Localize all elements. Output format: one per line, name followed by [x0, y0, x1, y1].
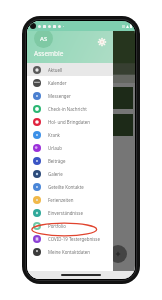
button[interactable]: Meine Kontaktdaten [27, 245, 113, 258]
staticText: Hol- und Bringdaten [48, 119, 91, 125]
button[interactable]: Portfolio [27, 219, 113, 232]
button[interactable]: Ferienzeiten [27, 193, 113, 206]
staticText: Assemble [34, 49, 64, 58]
staticText: AS [40, 35, 48, 43]
staticText: Galerie [48, 171, 63, 177]
staticText: Einverständnisse [48, 210, 83, 216]
staticText: Beiträge [48, 158, 66, 164]
staticText: Check-in Nachricht [48, 106, 87, 112]
staticText: Aktuell [48, 67, 63, 73]
staticText: Meine Kontaktdaten [48, 249, 90, 255]
staticText: Geteilte Kontakte [48, 184, 84, 190]
staticText: Portfolio [48, 223, 66, 229]
staticText: Ferienzeiten [48, 197, 74, 203]
button[interactable]: AS [34, 29, 53, 48]
button[interactable]: Einverständnisse [27, 206, 113, 219]
button[interactable]: Hol- und Bringdaten [27, 115, 113, 128]
button[interactable]: Add [109, 245, 127, 263]
button[interactable]: Geteilte Kontakte [27, 180, 113, 193]
staticText: Kalender [48, 80, 67, 86]
button[interactable]: Beiträge [27, 154, 113, 167]
button[interactable]: Kalender [27, 76, 113, 89]
staticText: Messenger [48, 93, 71, 99]
button[interactable]: Check-in Nachricht [27, 102, 113, 115]
button[interactable]: Aktuell [27, 63, 113, 76]
staticText: Krank [48, 132, 60, 138]
button[interactable]: Urlaub [27, 141, 113, 154]
staticText: Urlaub [48, 145, 63, 151]
button[interactable]: Settings [96, 36, 108, 48]
button[interactable]: Galerie [27, 167, 113, 180]
button[interactable]: Messenger [27, 89, 113, 102]
staticText: COVID-19 Testergebnisse [48, 236, 100, 242]
button[interactable]: COVID-19 Testergebnisse [27, 232, 113, 245]
button[interactable]: Krank [27, 128, 113, 141]
